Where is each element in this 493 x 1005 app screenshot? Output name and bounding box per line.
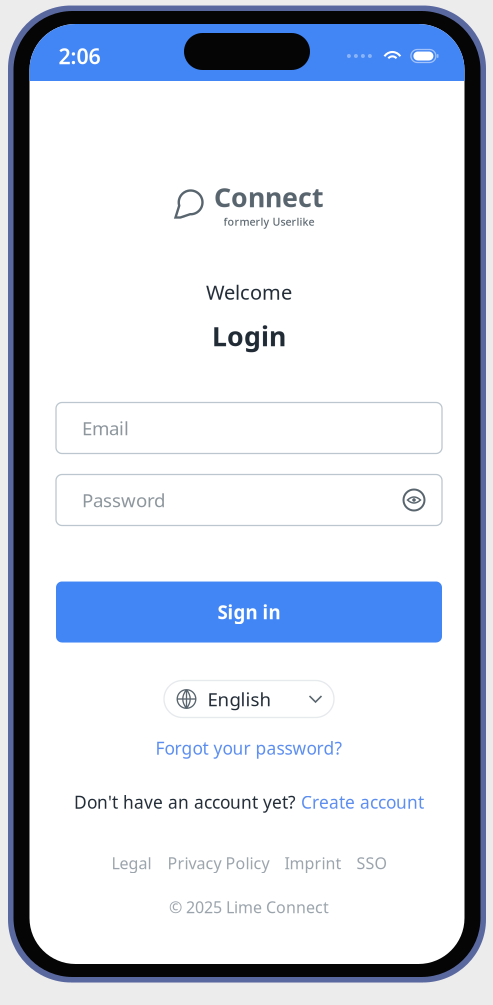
staticText: SSO (356, 852, 386, 874)
button[interactable]: Create account (301, 790, 424, 813)
button[interactable]: Sign in (56, 581, 442, 642)
button[interactable]: Imprint (284, 852, 341, 874)
staticText: Password (82, 488, 165, 512)
button[interactable]: English (164, 680, 334, 717)
button[interactable]: Forgot your password? (155, 736, 342, 759)
staticText: Create account (301, 790, 424, 813)
staticText: Sign in (217, 600, 280, 624)
staticText: 2:06 (58, 42, 100, 70)
button[interactable]: Show password (394, 478, 434, 522)
staticText: Forgot your password? (155, 736, 342, 759)
staticText: English (207, 687, 271, 711)
staticText: Privacy Policy (167, 852, 269, 874)
staticText: formerly Userlike (223, 215, 314, 229)
button[interactable]: Privacy Policy (167, 852, 269, 874)
button[interactable]: SSO (356, 852, 386, 874)
staticText: Connect (214, 179, 324, 215)
staticText: Login (212, 318, 286, 354)
button[interactable]: Legal (111, 852, 151, 874)
staticText: Legal (111, 852, 151, 874)
staticText: Welcome (206, 279, 292, 305)
staticText: Don't have an account yet? (74, 790, 296, 813)
staticText: Imprint (284, 852, 341, 874)
staticText: Email (82, 416, 129, 440)
staticText: © 2025 Lime Connect (169, 896, 329, 918)
